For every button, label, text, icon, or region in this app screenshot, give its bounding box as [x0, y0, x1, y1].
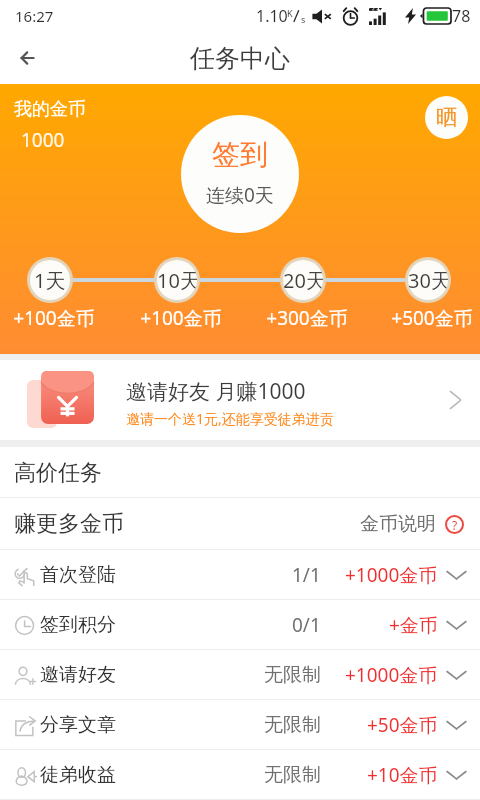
- staticText: s: [301, 13, 306, 25]
- staticText: 1天: [34, 267, 66, 294]
- staticText: +10金币: [367, 762, 438, 788]
- staticText: +100金币: [140, 305, 222, 331]
- button[interactable]: Back: [6, 36, 50, 80]
- staticText: 高价任务: [14, 459, 102, 487]
- button[interactable]: 签到积分: [0, 600, 480, 650]
- staticText: 78: [452, 5, 471, 27]
- staticText: 首次登陆: [40, 563, 116, 587]
- staticText: 16:27: [15, 6, 54, 26]
- staticText: +100金币: [13, 305, 95, 331]
- staticText: 20天: [283, 267, 323, 294]
- staticText: +300金币: [266, 305, 348, 331]
- button[interactable]: 分享文章: [0, 700, 480, 750]
- staticText: 连续0天: [206, 182, 274, 208]
- button[interactable]: 晒: [425, 96, 468, 139]
- staticText: 无限制: [264, 763, 321, 787]
- button[interactable]: 10天: [157, 260, 197, 300]
- staticText: ?: [452, 517, 458, 533]
- button[interactable]: 邀请好友 月赚1000: [0, 360, 480, 440]
- staticText: 任务中心: [190, 43, 290, 74]
- staticText: +金币: [389, 612, 438, 638]
- staticText: 我的金币: [14, 98, 86, 121]
- staticText: +1000金币: [345, 562, 438, 588]
- staticText: 1000: [21, 127, 65, 153]
- staticText: +500金币: [391, 305, 473, 331]
- button[interactable]: 签到: [181, 115, 299, 233]
- staticText: 分享文章: [40, 713, 116, 737]
- staticText: 徒弟收益: [40, 763, 116, 787]
- staticText: +50金币: [367, 712, 438, 738]
- button[interactable]: 金币说明: [360, 512, 464, 536]
- staticText: 签到: [212, 137, 268, 172]
- button[interactable]: 1天: [30, 260, 70, 300]
- button[interactable]: 30天: [408, 260, 448, 300]
- staticText: K: [287, 7, 293, 19]
- staticText: 无限制: [264, 663, 321, 687]
- button[interactable]: 徒弟收益: [0, 750, 480, 800]
- staticText: 晒: [436, 104, 458, 132]
- staticText: 邀请好友 月赚1000: [126, 377, 306, 406]
- staticText: 0/1: [292, 612, 321, 638]
- staticText: 金币说明: [360, 512, 436, 536]
- staticText: 签到积分: [40, 613, 116, 637]
- button[interactable]: 邀请好友: [0, 650, 480, 700]
- staticText: 30天: [408, 267, 448, 294]
- staticText: 1.10: [256, 5, 288, 27]
- button[interactable]: 20天: [283, 260, 323, 300]
- button[interactable]: 首次登陆: [0, 550, 480, 600]
- staticText: +1000金币: [345, 662, 438, 688]
- staticText: 邀请一个送1元,还能享受徒弟进贡: [126, 409, 334, 428]
- staticText: 邀请好友: [40, 663, 116, 687]
- staticText: 1/1: [292, 562, 321, 588]
- staticText: 赚更多金币: [14, 510, 124, 538]
- staticText: 10天: [157, 267, 197, 294]
- staticText: 无限制: [264, 713, 321, 737]
